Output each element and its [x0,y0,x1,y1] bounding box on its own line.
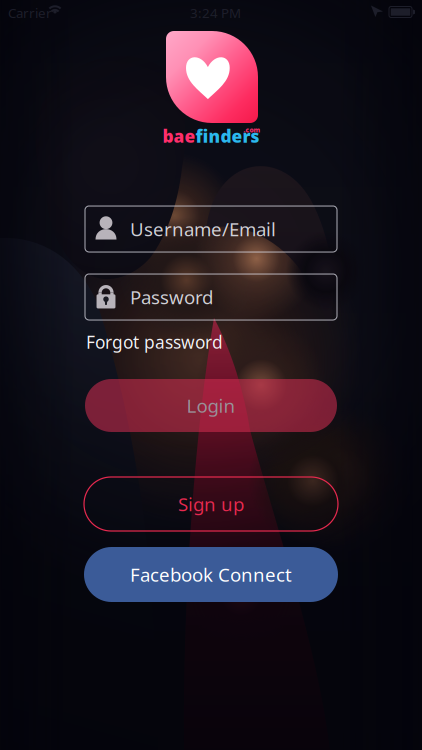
staticText: Forgot password [86,330,223,353]
staticText: finders [195,124,259,147]
staticText: Username/Email [130,217,276,241]
staticText: Password [130,285,213,309]
staticText: Sign up [178,492,244,516]
button[interactable]: Forgot password [86,331,223,353]
staticText: bae [162,124,195,147]
staticText: .com [243,125,260,134]
staticText: 3:24 PM [190,4,241,22]
button[interactable]: Sign up [84,477,338,531]
staticText: Login [186,393,235,418]
staticText: Carrier [8,4,52,22]
staticText: Facebook Connect [130,562,292,587]
button[interactable]: Facebook Connect [84,547,338,602]
button[interactable]: Login [85,379,337,432]
